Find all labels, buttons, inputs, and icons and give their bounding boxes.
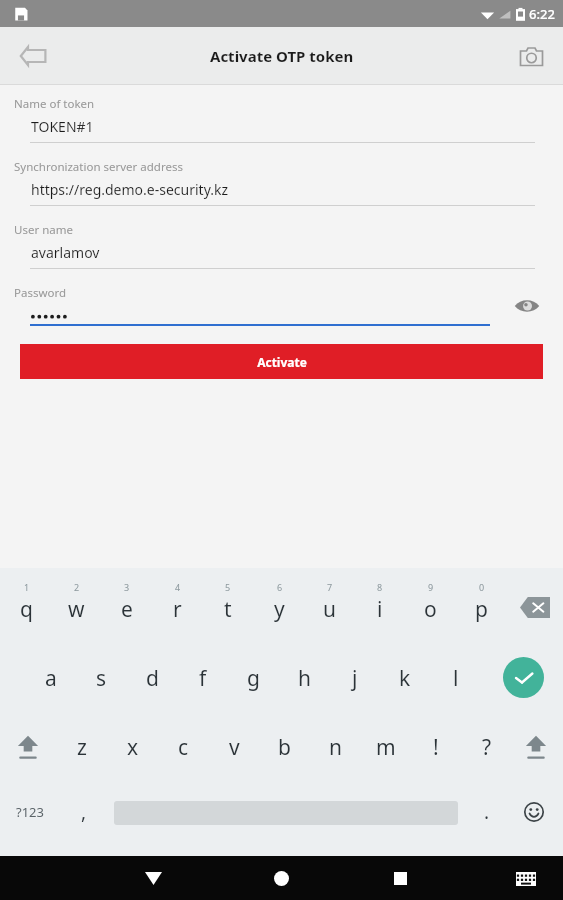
button[interactable]: b — [260, 723, 308, 771]
button[interactable]: 4 — [153, 576, 201, 628]
button[interactable]: g — [229, 654, 277, 702]
staticText: Activate OTP token — [210, 46, 354, 66]
staticText: o — [424, 595, 437, 624]
staticText: Activate — [257, 354, 307, 370]
button[interactable]: 5 — [204, 576, 252, 628]
staticText: 6:22 — [529, 5, 555, 23]
button[interactable]: ? — [463, 723, 511, 771]
staticText: h — [298, 664, 311, 693]
button[interactable]: x — [109, 723, 157, 771]
staticText: z — [77, 733, 87, 762]
staticText: 8 — [377, 581, 383, 593]
button[interactable]: Back — [12, 34, 56, 78]
staticText: f — [199, 664, 207, 693]
staticText: s — [96, 664, 107, 693]
staticText: k — [399, 664, 411, 693]
button[interactable]: Shift — [514, 723, 558, 771]
button[interactable]: , — [64, 790, 104, 834]
button[interactable]: Shift — [6, 723, 50, 771]
staticText: 2 — [74, 581, 80, 593]
staticText: User name — [14, 222, 73, 238]
staticText: ! — [433, 733, 439, 762]
staticText: Name of token — [14, 96, 95, 112]
button[interactable]: n — [311, 723, 359, 771]
staticText: 9 — [428, 581, 434, 593]
staticText: 1 — [24, 581, 30, 593]
button[interactable]: 1 — [2, 576, 50, 628]
staticText: 6 — [277, 581, 283, 593]
staticText: 3 — [124, 581, 130, 593]
staticText: l — [453, 664, 459, 693]
button[interactable]: h — [280, 654, 328, 702]
staticText: https://reg.demo.e-security.kz — [31, 180, 229, 199]
staticText: 7 — [327, 581, 333, 593]
staticText: b — [278, 733, 291, 762]
staticText: n — [329, 733, 342, 762]
button[interactable]: Backspace — [513, 590, 557, 624]
button[interactable]: 3 — [103, 576, 151, 628]
button[interactable]: d — [128, 654, 176, 702]
staticText: p — [475, 595, 488, 624]
button[interactable]: m — [362, 723, 410, 771]
button[interactable]: 8 — [356, 576, 404, 628]
staticText: . — [484, 799, 490, 825]
staticText: y — [274, 595, 285, 624]
staticText: i — [377, 595, 383, 624]
button[interactable]: ! — [412, 723, 460, 771]
button[interactable]: Switch keyboard — [513, 866, 539, 892]
button[interactable]: k — [381, 654, 429, 702]
staticText: TOKEN#1 — [31, 117, 94, 136]
button[interactable]: f — [179, 654, 227, 702]
staticText: 4 — [175, 581, 181, 593]
button[interactable]: v — [210, 723, 258, 771]
button[interactable]: j — [331, 654, 379, 702]
staticText: Password — [14, 285, 67, 301]
button[interactable]: 2 — [52, 576, 100, 628]
staticText: x — [127, 733, 139, 762]
staticText: 0 — [479, 581, 485, 593]
button[interactable]: Activate — [20, 344, 543, 379]
staticText: avarlamov — [31, 243, 100, 262]
staticText: e — [121, 595, 133, 624]
staticText: u — [323, 595, 336, 624]
staticText: Synchronization server address — [14, 159, 183, 175]
button[interactable]: 6 — [255, 576, 303, 628]
staticText: c — [178, 733, 189, 762]
staticText: r — [173, 595, 182, 624]
button[interactable]: Emoji — [512, 790, 556, 834]
button[interactable]: . — [468, 790, 506, 834]
staticText: m — [376, 733, 396, 762]
button[interactable]: z — [58, 723, 106, 771]
staticText: v — [229, 733, 240, 762]
staticText: w — [68, 595, 85, 624]
button[interactable]: Scan QR code with camera — [509, 34, 553, 78]
button[interactable]: Hide keyboard — [141, 866, 165, 890]
button[interactable]: Enter — [503, 657, 544, 698]
staticText: j — [352, 664, 358, 693]
button[interactable]: ?123 — [2, 790, 58, 834]
staticText: t — [224, 595, 232, 624]
staticText: ? — [482, 733, 492, 762]
button[interactable]: s — [77, 654, 125, 702]
button[interactable]: 7 — [305, 576, 353, 628]
staticText: g — [247, 664, 260, 693]
staticText: , — [81, 799, 87, 825]
button[interactable]: Show password — [507, 286, 547, 326]
button[interactable]: Home — [269, 866, 293, 890]
button[interactable]: 0 — [457, 576, 505, 628]
button[interactable]: l — [432, 654, 480, 702]
staticText: 5 — [225, 581, 231, 593]
button[interactable]: Recent apps — [388, 866, 412, 890]
button[interactable]: c — [159, 723, 207, 771]
staticText: d — [146, 664, 159, 693]
staticText: a — [45, 664, 57, 693]
button[interactable]: 9 — [406, 576, 454, 628]
button[interactable]: a — [27, 654, 75, 702]
staticText: ?123 — [16, 803, 44, 821]
staticText: q — [20, 595, 33, 624]
